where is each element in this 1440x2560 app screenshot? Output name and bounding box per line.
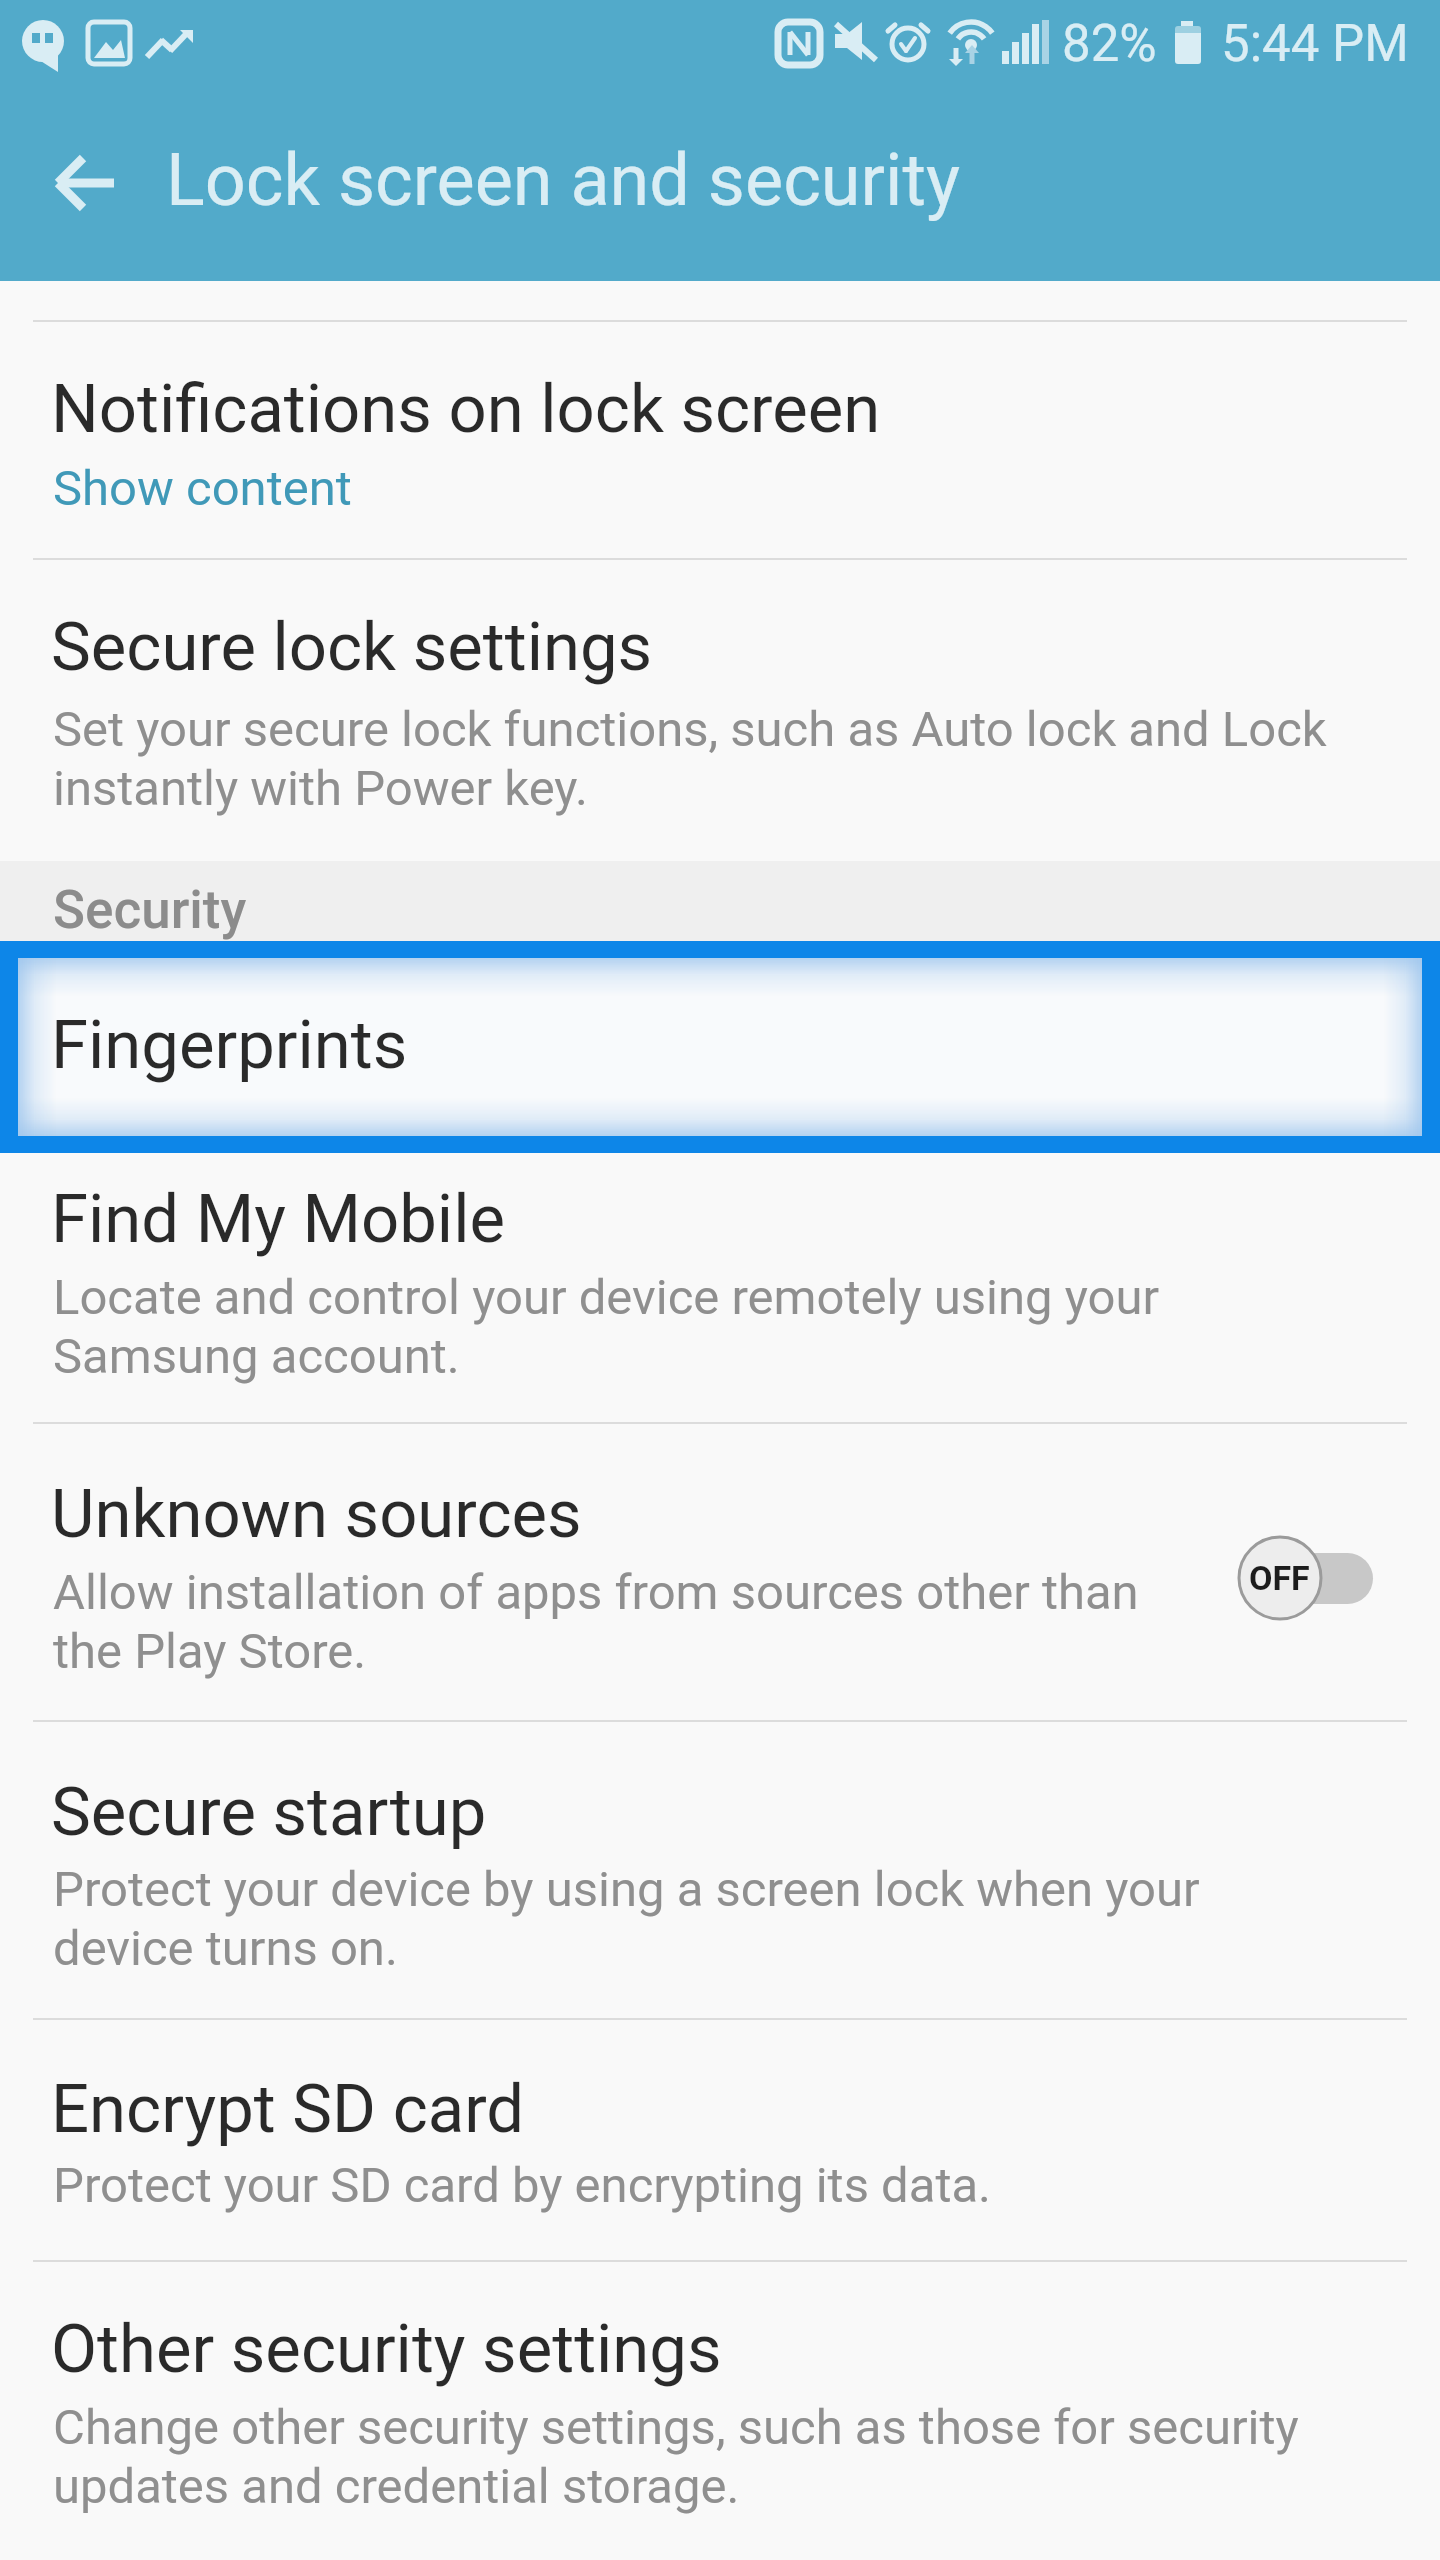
button[interactable]: Find My Mobile: [0, 1154, 1440, 1422]
staticText: Unknown sources: [51, 1475, 582, 1554]
staticText: Secure startup: [51, 1773, 487, 1852]
staticText: Protect your SD card by encrypting its d…: [53, 2157, 991, 2214]
staticText: Show content: [53, 460, 352, 517]
staticText: Set your secure lock functions, such as …: [53, 701, 1327, 817]
staticText: Other security settings: [51, 2310, 722, 2389]
staticText: Encrypt SD card: [51, 2070, 525, 2149]
staticText: Fingerprints: [51, 1006, 408, 1085]
button[interactable]: Secure lock settings: [0, 561, 1440, 860]
staticText: Notifications on lock screen: [51, 370, 881, 449]
button[interactable]: Secure startup: [0, 1722, 1440, 2018]
button[interactable]: Unknown sources: [0, 1424, 1440, 1720]
staticText: Security: [53, 879, 247, 941]
button[interactable]: Fingerprints: [0, 941, 1440, 1153]
staticText: Secure lock settings: [51, 608, 653, 687]
button[interactable]: Encrypt SD card: [0, 2021, 1440, 2260]
staticText: Allow installation of apps from sources …: [53, 1564, 1139, 1680]
staticText: OFF: [1249, 1558, 1310, 1598]
staticText: Protect your device by using a screen lo…: [53, 1861, 1200, 1977]
button[interactable]: Notifications on lock screen: [0, 323, 1440, 558]
staticText: Find My Mobile: [51, 1180, 505, 1259]
staticText: 82%: [1062, 14, 1157, 74]
staticText: Change other security settings, such as …: [53, 2399, 1299, 2515]
button[interactable]: Other security settings: [0, 2263, 1440, 2560]
staticText: Locate and control your device remotely …: [53, 1269, 1160, 1385]
staticText: 5:44 PM: [1221, 14, 1409, 74]
staticText: Lock screen and security: [166, 138, 961, 222]
button[interactable]: OFF: [1238, 1536, 1373, 1620]
button[interactable]: [30, 130, 140, 240]
